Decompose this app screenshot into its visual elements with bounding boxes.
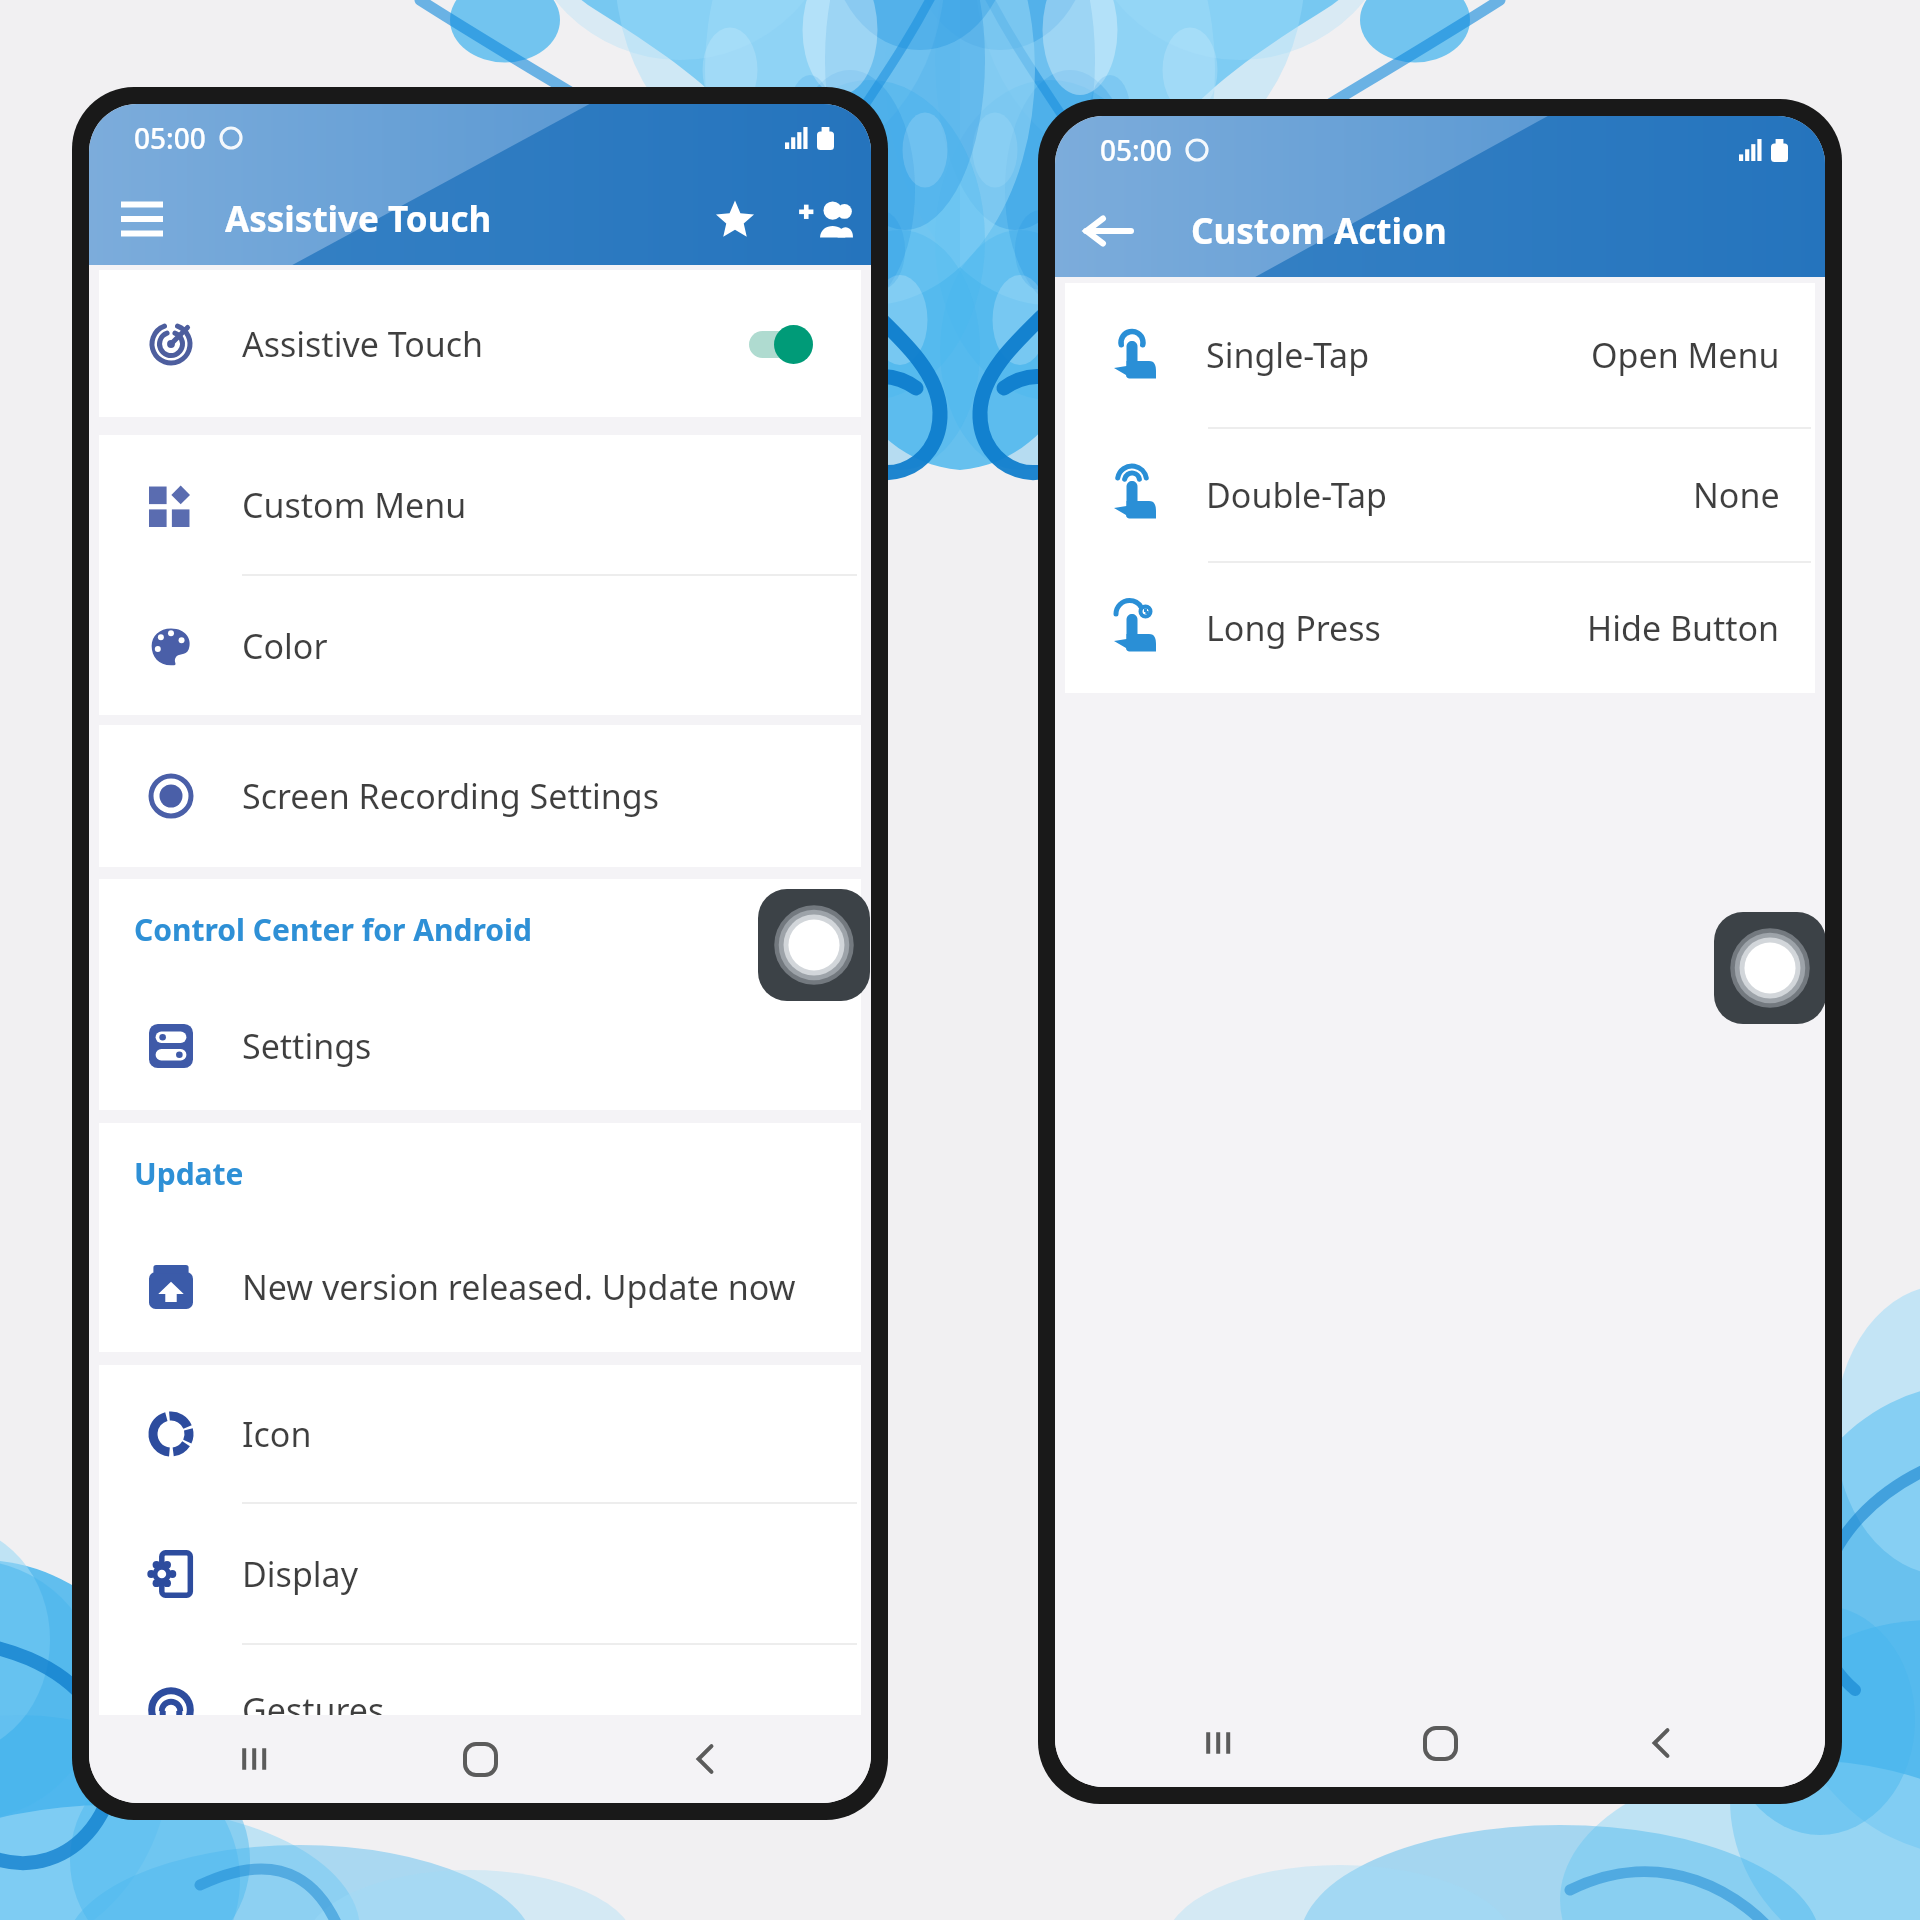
staticText: Gestures — [242, 1687, 385, 1733]
button[interactable]: Recent apps — [215, 1719, 295, 1799]
button[interactable]: Assistive Touch on — [749, 324, 813, 364]
staticText: Assistive Touch — [242, 321, 484, 367]
staticText: New version released. Update now — [242, 1264, 796, 1310]
button[interactable]: Custom Menu — [99, 435, 861, 574]
button[interactable]: Screen Recording Settings — [99, 725, 861, 867]
button[interactable]: Gestures — [99, 1675, 861, 1745]
staticText: Update — [134, 1153, 244, 1194]
button[interactable]: Invite friends — [789, 183, 861, 255]
button[interactable]: Back — [1621, 1703, 1701, 1783]
button[interactable]: Assistive Touch — [99, 270, 861, 417]
button[interactable]: Long Press — [1065, 563, 1815, 693]
staticText: Screen Recording Settings — [242, 773, 659, 819]
button[interactable]: Menu — [108, 185, 176, 253]
staticText: Color — [242, 623, 328, 669]
button[interactable]: Favorite — [699, 183, 771, 255]
button[interactable]: Home — [1400, 1703, 1480, 1783]
staticText: Custom Menu — [242, 482, 467, 528]
staticText: Custom Action — [1191, 207, 1447, 255]
staticText: Control Center for Android — [134, 909, 532, 950]
button[interactable]: Assistive touch button — [1714, 912, 1825, 1024]
button[interactable]: Single-Tap — [1065, 283, 1815, 427]
button[interactable]: Home — [440, 1719, 520, 1799]
staticText: None — [1693, 472, 1780, 518]
staticText: Settings — [242, 1023, 372, 1069]
staticText: Double-Tap — [1206, 472, 1388, 518]
staticText: Long Press — [1206, 605, 1381, 651]
staticText: Hide Button — [1587, 605, 1780, 651]
button[interactable]: Icon — [99, 1365, 861, 1502]
button[interactable]: Back — [665, 1719, 745, 1799]
button[interactable]: New version released. Update now — [99, 1222, 861, 1352]
button[interactable]: Display — [99, 1504, 861, 1643]
button[interactable]: Color — [99, 576, 861, 715]
button[interactable]: Recent apps — [1179, 1703, 1259, 1783]
button[interactable]: Double-Tap — [1065, 429, 1815, 561]
staticText: Icon — [242, 1411, 312, 1457]
staticText: Display — [242, 1551, 358, 1597]
button[interactable]: Assistive touch button — [758, 889, 870, 1001]
staticText: 05:00 — [1100, 131, 1172, 169]
staticText: Single-Tap — [1206, 332, 1370, 378]
staticText: 05:00 — [134, 119, 206, 157]
staticText: Open Menu — [1591, 332, 1780, 378]
staticText: Assistive Touch — [225, 195, 492, 243]
button[interactable]: Back — [1074, 197, 1142, 265]
button[interactable]: Settings — [99, 982, 861, 1110]
